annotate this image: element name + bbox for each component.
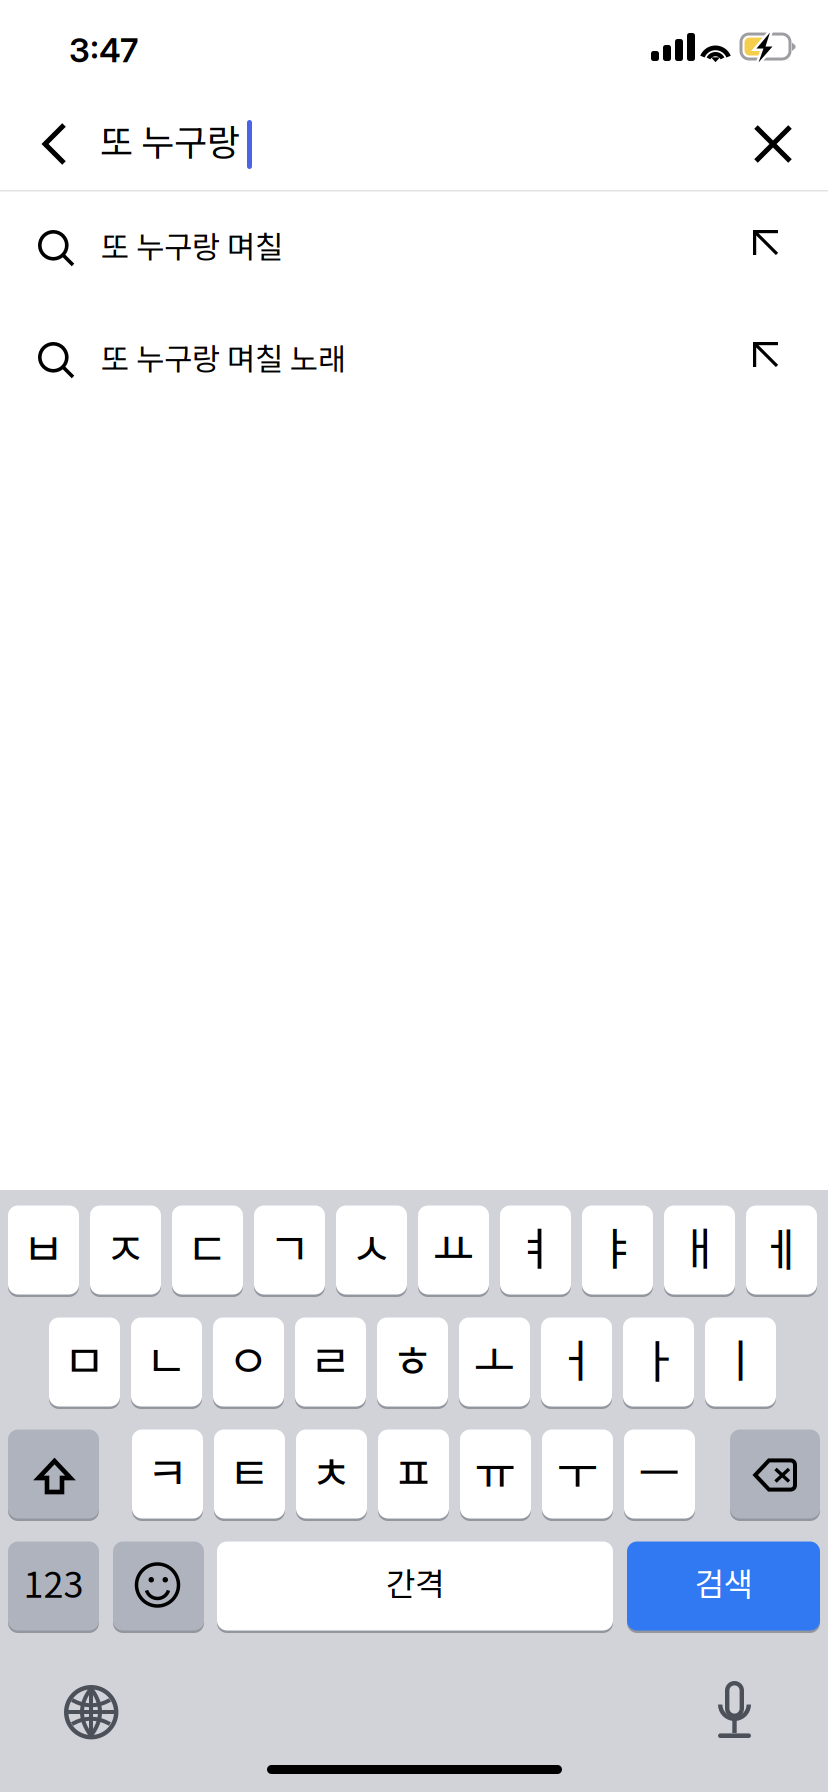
staticText: ㅎ xyxy=(391,1325,433,1391)
button[interactable]: ㅋ xyxy=(132,1428,203,1520)
button[interactable]: Shift xyxy=(8,1428,99,1520)
staticText: ㅔ xyxy=(760,1213,802,1279)
button[interactable]: 또 누구랑 며칠 xyxy=(0,192,828,304)
staticText: ㄴ xyxy=(145,1325,187,1391)
staticText: ㅑ xyxy=(596,1213,638,1279)
button[interactable]: ㅍ xyxy=(378,1428,449,1520)
staticText: 또 누구랑 며칠 xyxy=(101,223,283,267)
button[interactable]: ㅔ xyxy=(746,1204,817,1296)
button[interactable]: Clear search xyxy=(754,96,828,192)
staticText: 또 누구랑 며칠 노래 xyxy=(101,335,346,379)
staticText: ㄱ xyxy=(268,1213,310,1279)
staticText: ㄹ xyxy=(309,1325,351,1391)
staticText: ㅂ xyxy=(22,1213,64,1279)
staticText: ㅐ xyxy=(678,1213,720,1279)
button[interactable]: ㅁ xyxy=(49,1316,120,1408)
button[interactable]: ㅌ xyxy=(214,1428,285,1520)
staticText: ㅏ xyxy=(637,1325,679,1391)
button[interactable]: Delete xyxy=(730,1428,820,1520)
button[interactable]: ㄱ xyxy=(254,1204,325,1296)
staticText: ㅌ xyxy=(228,1437,270,1503)
staticText: 간격 xyxy=(386,1559,444,1605)
staticText: ㅕ xyxy=(514,1213,556,1279)
button[interactable]: ㄷ xyxy=(172,1204,243,1296)
button[interactable]: 123 xyxy=(8,1540,99,1632)
staticText: ㅡ xyxy=(638,1437,680,1503)
button[interactable]: Emoji keyboard xyxy=(113,1540,204,1632)
staticText: ㅇ xyxy=(227,1325,269,1391)
button[interactable]: ㅊ xyxy=(296,1428,367,1520)
button[interactable]: ㅓ xyxy=(541,1316,612,1408)
button[interactable]: ㄴ xyxy=(131,1316,202,1408)
button[interactable]: ㅡ xyxy=(624,1428,695,1520)
staticText: ㅠ xyxy=(474,1437,516,1503)
button[interactable]: 간격 xyxy=(217,1540,613,1632)
staticText: ㄷ xyxy=(186,1213,228,1279)
button[interactable]: ㅣ xyxy=(705,1316,776,1408)
button[interactable]: ㅗ xyxy=(459,1316,530,1408)
button[interactable]: ㅅ xyxy=(336,1204,407,1296)
button[interactable]: Dictate xyxy=(718,1681,751,1738)
staticText: 검색 xyxy=(694,1559,752,1605)
button[interactable]: 또 누구랑 며칠 노래 xyxy=(0,304,828,416)
staticText: ㅛ xyxy=(432,1213,474,1279)
button[interactable]: ㄹ xyxy=(295,1316,366,1408)
button[interactable]: 검색 xyxy=(627,1540,820,1632)
button[interactable]: ㅎ xyxy=(377,1316,448,1408)
button[interactable]: Switch keyboard xyxy=(64,1685,120,1741)
button[interactable]: ㅠ xyxy=(460,1428,531,1520)
staticText: ㅓ xyxy=(555,1325,597,1391)
staticText: ㅋ xyxy=(146,1437,188,1503)
button[interactable]: ㅏ xyxy=(623,1316,694,1408)
staticText: ㅣ xyxy=(719,1325,761,1391)
staticText: ㅈ xyxy=(104,1213,146,1279)
staticText: ㅁ xyxy=(63,1325,105,1391)
staticText: ㅍ xyxy=(392,1437,434,1503)
button[interactable]: ㅜ xyxy=(542,1428,613,1520)
button[interactable]: ㅛ xyxy=(418,1204,489,1296)
button[interactable]: ㅂ xyxy=(8,1204,79,1296)
staticText: ㅜ xyxy=(556,1437,598,1503)
button[interactable]: ㅕ xyxy=(500,1204,571,1296)
button[interactable]: ㅇ xyxy=(213,1316,284,1408)
button[interactable]: ㅐ xyxy=(664,1204,735,1296)
staticText: 또 누구랑 xyxy=(100,114,240,166)
button[interactable]: Back xyxy=(24,96,92,192)
staticText: ㅊ xyxy=(310,1437,352,1503)
staticText: 123 xyxy=(23,1556,83,1608)
button[interactable]: ㅑ xyxy=(582,1204,653,1296)
staticText: ㅅ xyxy=(350,1213,392,1279)
staticText: ㅗ xyxy=(473,1325,515,1391)
button[interactable]: ㅈ xyxy=(90,1204,161,1296)
staticText: 3:47 xyxy=(69,30,138,70)
